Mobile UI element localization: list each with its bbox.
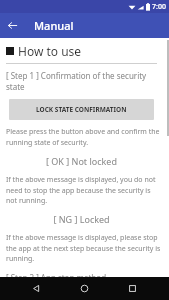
staticText: Manual xyxy=(34,18,74,33)
button[interactable]: Back xyxy=(25,277,48,300)
staticText: If the above message is displayed, pleas… xyxy=(6,233,163,263)
button[interactable]: LOCK STATE CONFIRMATION xyxy=(9,99,154,120)
staticText: [ Step 1 ] Confirmation of the security … xyxy=(6,70,163,92)
staticText: [ NG ] Locked xyxy=(6,213,157,225)
button[interactable]: Home xyxy=(73,277,96,300)
staticText: Please press the button above and confir… xyxy=(6,127,163,147)
button[interactable]: Recent apps xyxy=(121,277,144,300)
staticText: How to use xyxy=(18,43,82,59)
staticText: [ OK ] Not locked xyxy=(6,155,157,167)
staticText: If the above message is displayed, you d… xyxy=(6,175,163,205)
staticText: [ Step 2 ] App stop method xyxy=(6,272,107,277)
staticText: 7:00 xyxy=(152,2,166,12)
staticText: LOCK STATE CONFIRMATION xyxy=(36,105,127,114)
button[interactable]: Back xyxy=(0,13,25,38)
